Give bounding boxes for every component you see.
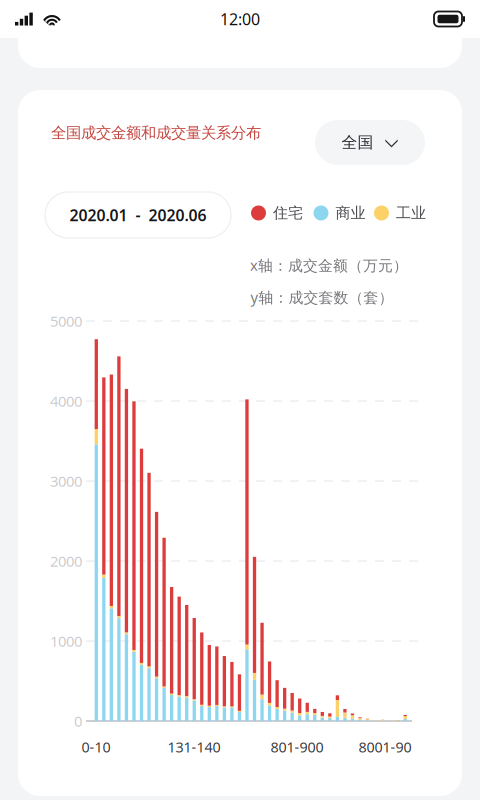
staticText: 131-140: [167, 737, 220, 757]
staticText: 0-10: [81, 737, 110, 757]
staticText: 2020.01 - 2020.06: [69, 204, 206, 226]
staticText: 全国: [341, 132, 373, 152]
staticText: 8001-90: [358, 737, 411, 757]
staticText: 商业: [335, 204, 365, 222]
staticText: 0: [74, 711, 82, 731]
staticText: 5000: [50, 311, 82, 331]
staticText: 4000: [50, 391, 82, 411]
staticText: 3000: [50, 471, 82, 491]
staticText: 2000: [50, 551, 82, 571]
staticText: 全国成交金额和成交量关系分布: [51, 123, 261, 143]
staticText: 工业: [396, 204, 426, 222]
staticText: y轴：成交套数（套）: [250, 287, 393, 307]
staticText: x轴：成交金额（万元）: [250, 255, 408, 275]
staticText: 1000: [50, 631, 82, 651]
staticText: 住宅: [273, 204, 303, 222]
button[interactable]: 2020.01 - 2020.06: [45, 192, 231, 238]
button[interactable]: 全国: [315, 120, 425, 165]
staticText: 12:00: [220, 8, 260, 30]
staticText: 801-900: [270, 737, 323, 757]
